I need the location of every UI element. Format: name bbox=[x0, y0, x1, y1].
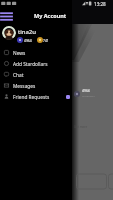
button[interactable]: Buy stardollars bbox=[76, 174, 107, 190]
staticText: Stardollars bbox=[82, 94, 95, 97]
staticText: Get more bbox=[74, 125, 88, 129]
button[interactable]: News bbox=[0, 47, 72, 58]
staticText: Friend Requests bbox=[13, 94, 50, 101]
button[interactable]: Friend Requests bbox=[0, 91, 72, 102]
button[interactable]: Open navigation menu bbox=[1, 11, 12, 22]
staticText: 741 bbox=[43, 38, 49, 42]
button[interactable]: Messages bbox=[0, 80, 72, 91]
staticText: News bbox=[13, 50, 26, 57]
staticText: 13:28 bbox=[94, 1, 106, 7]
staticText: 4964 bbox=[24, 38, 32, 42]
staticText: Add Stardollars bbox=[13, 61, 48, 68]
staticText: 4964 bbox=[82, 88, 90, 93]
staticText: Messages bbox=[13, 83, 36, 90]
staticText: My Account bbox=[34, 12, 67, 19]
button[interactable]: Add Stardollars bbox=[0, 58, 72, 69]
button[interactable]: 4964 bbox=[74, 88, 106, 101]
button[interactable]: Chat bbox=[0, 69, 72, 80]
staticText: Chat bbox=[13, 72, 24, 79]
staticText: tina2u bbox=[18, 28, 36, 36]
button[interactable]: tina2u bbox=[0, 26, 72, 45]
